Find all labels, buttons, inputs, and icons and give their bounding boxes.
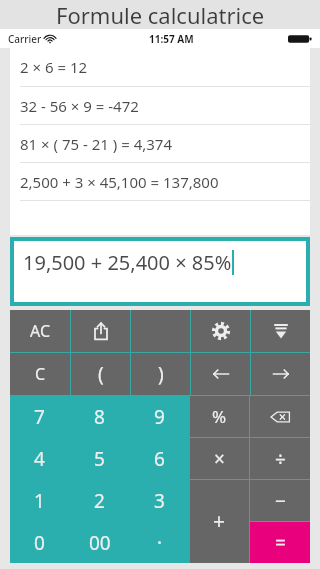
staticText: 11:57 AM — [149, 32, 194, 46]
staticText: 19,500 + 25,400 × 85% — [23, 249, 232, 276]
staticText: ) — [158, 361, 164, 387]
button[interactable]: Cursor left — [191, 353, 250, 395]
button[interactable]: AC — [10, 310, 70, 352]
staticText: 5 — [94, 446, 105, 472]
button[interactable]: 1 — [10, 480, 69, 521]
staticText: 6 — [154, 446, 165, 472]
button[interactable]: 81 × ( 75 - 21 ) = 4,374 — [10, 125, 310, 162]
button[interactable]: = — [250, 522, 310, 563]
staticText: ÷ — [275, 446, 286, 472]
staticText: + — [213, 507, 226, 536]
button[interactable]: 0 — [10, 522, 69, 563]
button[interactable]: 00 — [70, 522, 129, 563]
button[interactable]: 32 - 56 × 9 = -472 — [10, 87, 310, 124]
staticText: 2,500 + 3 × 45,100 = 137,800 — [20, 172, 219, 192]
button[interactable]: ÷ — [250, 438, 310, 479]
button[interactable]: 6 — [130, 438, 189, 479]
button[interactable]: 3 — [130, 480, 189, 521]
staticText: Formule calculatrice — [56, 0, 265, 29]
staticText: × — [214, 446, 225, 472]
staticText: 0 — [34, 530, 45, 556]
button[interactable]: × — [190, 438, 249, 479]
staticText: Carrier — [8, 32, 42, 46]
button[interactable]: 2,500 + 3 × 45,100 = 137,800 — [10, 163, 310, 200]
button[interactable]: 9 — [130, 396, 189, 437]
button[interactable]: − — [250, 480, 310, 521]
button[interactable]: % — [190, 396, 249, 437]
staticText: · — [157, 530, 163, 556]
button[interactable]: 5 — [70, 438, 129, 479]
staticText: ( — [98, 361, 104, 387]
staticText: 3 — [154, 488, 165, 514]
staticText: = — [275, 530, 286, 556]
staticText: C — [35, 363, 46, 385]
button[interactable]: + — [190, 480, 249, 563]
staticText: 2 — [94, 488, 105, 514]
button[interactable]: ( — [71, 353, 130, 395]
staticText: 81 × ( 75 - 21 ) = 4,374 — [20, 134, 173, 154]
button[interactable]: ) — [131, 353, 190, 395]
button[interactable]: Settings — [191, 310, 250, 352]
staticText: 2 × 6 = 12 — [20, 57, 88, 77]
staticText: AC — [30, 320, 51, 342]
button[interactable]: · — [130, 522, 189, 563]
staticText: 32 - 56 × 9 = -472 — [20, 96, 139, 116]
button[interactable]: Cursor right — [251, 353, 310, 395]
staticText: 9 — [154, 404, 165, 430]
staticText: 8 — [94, 404, 105, 430]
staticText: 4 — [34, 446, 45, 472]
staticText: 00 — [89, 530, 111, 556]
button[interactable]: Backspace — [250, 396, 310, 437]
button[interactable]: 2 × 6 = 12 — [10, 48, 310, 86]
button[interactable]: Share — [71, 310, 130, 352]
staticText: − — [275, 488, 286, 514]
button[interactable]: Collapse — [251, 310, 310, 352]
staticText: % — [212, 405, 227, 428]
staticText: 1 — [34, 488, 45, 514]
button[interactable]: 7 — [10, 396, 69, 437]
button[interactable]: 2 — [70, 480, 129, 521]
button[interactable]: 4 — [10, 438, 69, 479]
staticText: 7 — [34, 404, 45, 430]
button[interactable]: 19,500 + 25,400 × 85% — [14, 241, 306, 302]
button[interactable]: 8 — [70, 396, 129, 437]
button[interactable]: C — [10, 353, 70, 395]
